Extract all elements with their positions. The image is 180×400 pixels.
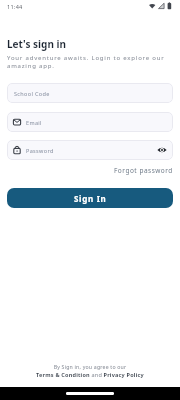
staticText: Your adventure awaits. Login to explore … (7, 54, 165, 69)
button[interactable]: School Code (7, 83, 173, 103)
button[interactable]: Sign In (7, 188, 173, 208)
staticText: 11:44 (7, 3, 23, 10)
staticText: Sign In (74, 193, 107, 204)
button[interactable]: Email (7, 112, 173, 132)
staticText: School Code (14, 90, 50, 97)
button[interactable] (157, 146, 167, 154)
staticText: By Sign in, you agree to our (0, 363, 180, 370)
button[interactable]: Terms & Condition and Privacy Policy (0, 371, 180, 378)
staticText: Email (26, 119, 42, 126)
staticText: Let's sign in (7, 37, 66, 51)
button[interactable]: Password (7, 140, 173, 160)
staticText: Password (26, 147, 54, 154)
button[interactable]: Forgot password (114, 166, 173, 175)
